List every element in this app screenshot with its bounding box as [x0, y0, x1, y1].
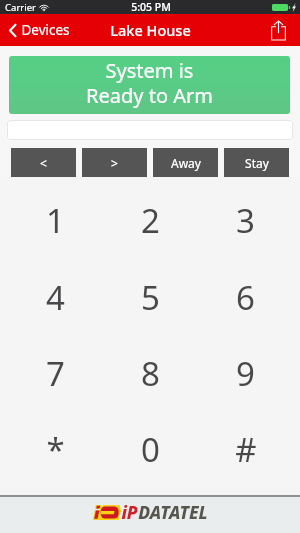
staticText: Lake House: [110, 20, 191, 40]
button[interactable]: Devices: [9, 21, 70, 39]
staticText: 3: [236, 198, 255, 243]
button[interactable]: 6: [198, 259, 293, 335]
staticText: 7: [46, 351, 65, 396]
staticText: >: [111, 155, 118, 171]
staticText: Devices: [21, 21, 70, 39]
staticText: 6: [236, 275, 255, 320]
button[interactable]: >: [82, 148, 147, 177]
button[interactable]: Stay: [224, 148, 289, 177]
button[interactable]: 4: [7, 259, 103, 335]
button[interactable]: [7, 120, 293, 140]
button[interactable]: <: [11, 148, 76, 177]
staticText: 5: [141, 275, 160, 320]
staticText: 8: [141, 351, 160, 396]
staticText: DATATEL: [138, 500, 208, 524]
staticText: Stay: [245, 155, 269, 171]
button[interactable]: 0: [103, 411, 198, 487]
button[interactable]: 8: [103, 335, 198, 411]
staticText: Carrier: [5, 1, 36, 14]
staticText: 1: [46, 198, 65, 243]
staticText: iP: [121, 500, 138, 524]
button[interactable]: Share: [266, 18, 290, 42]
staticText: 0: [141, 427, 160, 472]
staticText: System is Ready to Arm: [9, 57, 290, 109]
button[interactable]: #: [198, 411, 293, 487]
button[interactable]: 9: [198, 335, 293, 411]
staticText: 9: [236, 351, 255, 396]
button[interactable]: Away: [153, 148, 218, 177]
staticText: 2: [141, 198, 160, 243]
button[interactable]: 2: [103, 182, 198, 259]
button[interactable]: 3: [198, 182, 293, 259]
staticText: 4: [46, 275, 65, 320]
staticText: <: [40, 155, 47, 171]
button[interactable]: 5: [103, 259, 198, 335]
staticText: #: [235, 427, 257, 472]
staticText: Away: [171, 155, 201, 171]
staticText: *: [46, 427, 65, 472]
staticText: 5:05 PM: [131, 0, 171, 14]
button[interactable]: *: [7, 411, 103, 487]
button[interactable]: 1: [7, 182, 103, 259]
button[interactable]: 7: [7, 335, 103, 411]
